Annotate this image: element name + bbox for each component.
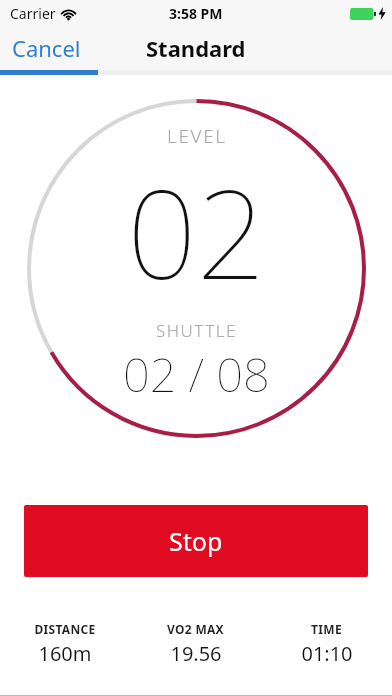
staticText: 19.56 <box>170 640 222 667</box>
other: Wi-Fi signal <box>61 8 76 20</box>
staticText: Carrier <box>10 4 56 23</box>
staticText: VO2 MAX <box>167 621 224 637</box>
staticText: 3:58 PM <box>169 4 223 23</box>
button[interactable]: Cancel <box>6 27 87 69</box>
staticText: 160m <box>38 640 92 667</box>
staticText: 02 / 08 <box>123 342 270 406</box>
staticText: Cancel <box>12 33 81 63</box>
staticText: Stop <box>169 524 223 558</box>
staticText: TIME <box>311 621 342 637</box>
staticText: DISTANCE <box>34 621 96 637</box>
staticText: SHUTTLE <box>156 319 237 342</box>
other: Battery charging <box>350 8 376 20</box>
staticText: 02 <box>127 149 267 315</box>
staticText: 01:10 <box>301 640 353 667</box>
staticText: LEVEL <box>167 123 227 149</box>
staticText: Standard <box>146 33 246 63</box>
button[interactable]: Stop <box>24 505 368 577</box>
